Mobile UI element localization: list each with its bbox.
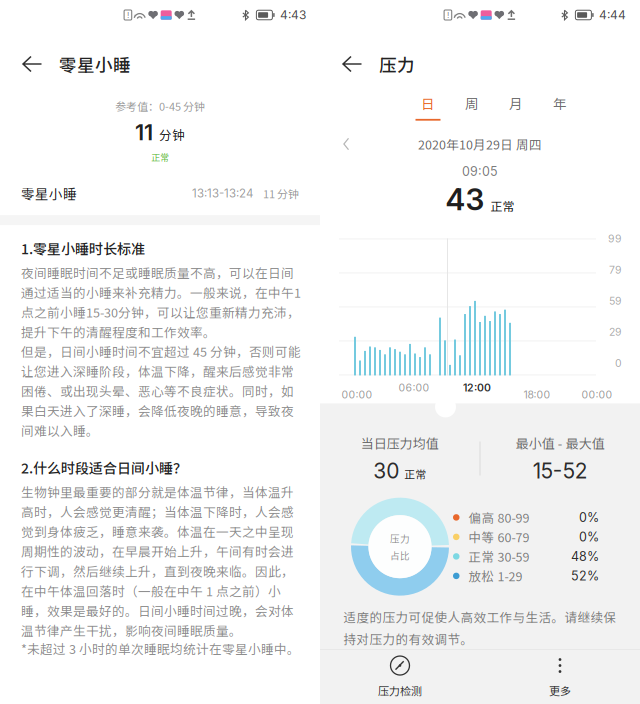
staticText: 零星小睡 [59, 51, 131, 77]
staticText: 30 [373, 458, 399, 484]
staticText: 52% [571, 568, 599, 583]
staticText: 但是，日间小睡时间不宜超过 45 分钟，否则可能让您进入深睡阶段，体温下降，醒来… [21, 342, 301, 439]
button[interactable]: Previous day [343, 131, 369, 157]
button[interactable]: 月 [494, 93, 538, 121]
staticText: 18:00 [523, 388, 550, 401]
staticText: 15-52 [533, 458, 588, 484]
staticText: 正常 [490, 197, 514, 214]
staticText: 43 [445, 181, 484, 217]
button[interactable]: 压力检测 [320, 650, 480, 704]
staticText: 中等 60-79 [468, 528, 529, 546]
staticText: 99 [608, 232, 622, 245]
staticText: 79 [609, 263, 622, 276]
staticText: 06:00 [398, 381, 429, 394]
staticText: 2020年10月29日 周四 [418, 135, 542, 153]
staticText: 最小值 - 最大值 [516, 433, 605, 452]
staticText: 59 [609, 295, 622, 307]
staticText: 月 [509, 93, 523, 113]
staticText: 正常 30-59 [468, 547, 529, 565]
staticText: 13:13-13:24 [192, 186, 253, 200]
staticText: 放松 1-29 [468, 567, 522, 585]
staticText: *未超过 3 小时的单次睡眠均统计在零星小睡中。 [21, 639, 300, 658]
button[interactable]: 年 [538, 93, 582, 121]
staticText: 压力检测 [378, 682, 422, 698]
button[interactable]: 日 [406, 93, 450, 121]
staticText: 48% [571, 549, 599, 564]
staticText: 12:00 [463, 381, 491, 394]
staticText: 分钟 [159, 125, 185, 143]
staticText: 压力 [390, 531, 410, 545]
staticText: 压力 [379, 51, 415, 77]
staticText: ! [127, 10, 129, 20]
staticText: 11 [135, 119, 153, 145]
staticText: 年 [553, 93, 567, 113]
button[interactable]: 周 [450, 93, 494, 121]
staticText: 4:43 [280, 8, 306, 22]
staticText: 日 [421, 93, 435, 113]
staticText: 生物钟里最重要的部分就是体温节律，当体温升高时，人会感觉更清醒；当体温下降时，人… [21, 483, 294, 639]
staticText: 占比 [390, 548, 410, 562]
button[interactable]: 压力 [320, 30, 640, 86]
staticText: 0 [615, 357, 622, 369]
staticText: 2.什么时段适合日间小睡？ [21, 457, 187, 478]
staticText: 09:05 [462, 164, 498, 179]
staticText: 更多 [549, 682, 571, 698]
staticText: 1.零星小睡时长标准 [21, 238, 145, 258]
staticText: 夜间睡眠时间不足或睡眠质量不高，可以在日间通过适当的小睡来补充精力。一般来说，在… [21, 263, 301, 341]
staticText: ! [447, 10, 449, 20]
staticText: 当日压力均值 [361, 433, 439, 452]
button[interactable]: 零星小睡 [0, 30, 320, 86]
staticText: 正常 [404, 466, 426, 482]
staticText: 参考值：0-45 分钟 [115, 98, 205, 114]
staticText: 0% [579, 529, 599, 544]
staticText: 00:00 [581, 388, 612, 401]
staticText: 适度的压力可促使人高效工作与生活。请继续保持对压力的有效调节。 [343, 608, 616, 648]
staticText: 正常 [151, 150, 169, 163]
staticText: 00:00 [341, 388, 372, 401]
staticText: 29 [609, 326, 622, 338]
staticText: 偏高 80-99 [468, 508, 529, 526]
staticText: 零星小睡 [21, 184, 77, 203]
staticText: 0% [579, 510, 599, 525]
staticText: 周 [465, 93, 479, 113]
button[interactable]: 更多 [480, 650, 640, 704]
staticText: 11 分钟 [263, 185, 299, 201]
staticText: 4:44 [599, 8, 626, 22]
